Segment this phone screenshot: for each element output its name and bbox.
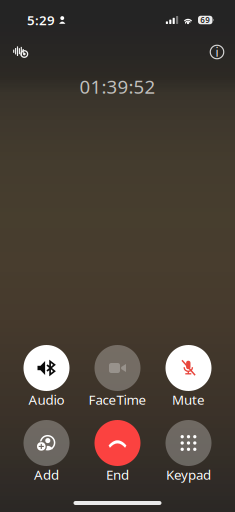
button[interactable]: Keypad xyxy=(153,420,224,481)
staticText: Mute xyxy=(172,391,205,408)
staticText: FaceTime xyxy=(88,391,146,408)
button[interactable]: End xyxy=(82,420,153,481)
staticText: End xyxy=(106,466,129,483)
button[interactable]: Live Voicemail xyxy=(7,39,34,65)
button[interactable]: Call Details xyxy=(204,39,230,65)
staticText: Add xyxy=(34,466,59,483)
button[interactable]: Mute xyxy=(153,345,224,406)
button[interactable]: FaceTime xyxy=(82,345,153,406)
button[interactable]: Audio xyxy=(11,345,82,406)
staticText: 01:39:52 xyxy=(79,74,155,99)
staticText: i xyxy=(215,44,218,60)
staticText: 5:29 xyxy=(27,11,55,29)
staticText: Keypad xyxy=(166,466,211,483)
staticText: Audio xyxy=(28,391,64,408)
button[interactable]: Add xyxy=(11,420,82,481)
staticText: 69 xyxy=(200,15,210,25)
